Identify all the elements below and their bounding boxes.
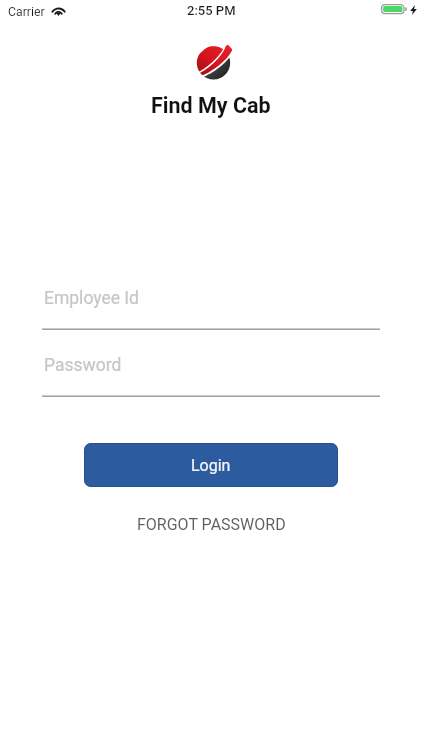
button[interactable]: Employee Id [42,288,380,330]
staticText: 2:55 PM [187,3,236,18]
staticText: Find My Cab [151,93,271,118]
staticText: Employee Id [44,288,139,309]
other: Wi-Fi [51,5,66,16]
button[interactable]: FORGOT PASSWORD [125,509,298,540]
button[interactable]: Login [84,443,338,487]
staticText: Password [44,355,122,376]
other: Charging [410,5,417,15]
other: Find My Cab logo [195,43,232,81]
staticText: FORGOT PASSWORD [137,515,286,534]
button[interactable]: Password [42,355,380,397]
staticText: Login [191,456,231,475]
staticText: Carrier [8,5,45,19]
other: Battery charging [381,4,408,15]
